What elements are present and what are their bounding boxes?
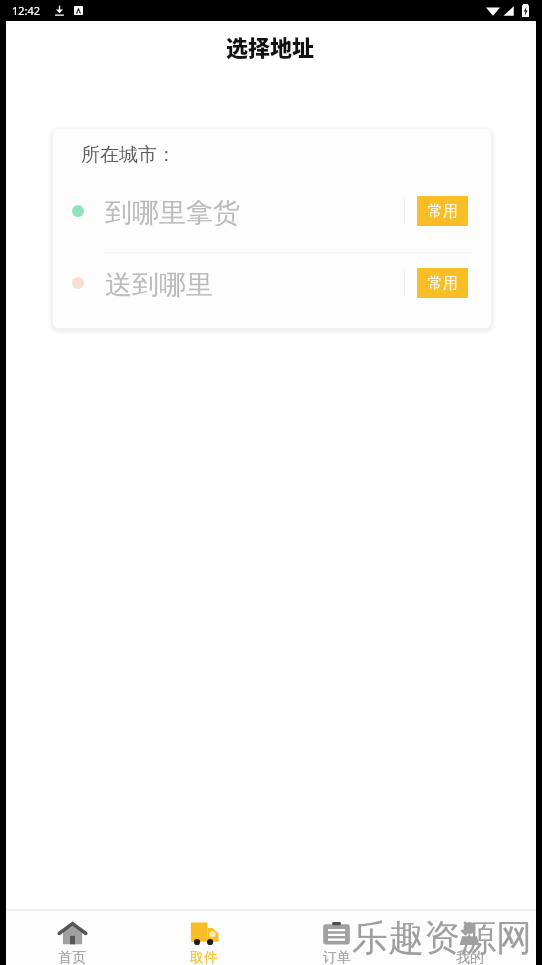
button[interactable]: Pickup	[138, 911, 270, 965]
staticText: 我的	[456, 949, 484, 965]
button[interactable]: 常用	[417, 196, 468, 226]
button[interactable]: Home	[6, 911, 138, 965]
staticText: 首页	[58, 949, 86, 965]
button[interactable]: 到哪里拿货	[53, 180, 491, 242]
staticText: 所在城市：	[81, 143, 176, 167]
button[interactable]: Orders	[270, 911, 403, 965]
other: Home	[57, 922, 88, 945]
button[interactable]: 送到哪里	[53, 252, 491, 314]
other: Pickup	[189, 922, 220, 945]
other: Profile	[454, 922, 485, 945]
staticText: 选择地址	[226, 30, 315, 62]
button[interactable]: 常用	[417, 268, 468, 298]
staticText: 12:42	[12, 3, 41, 18]
staticText: 到哪里拿货	[105, 196, 240, 226]
button[interactable]: Profile	[403, 911, 536, 965]
staticText: 取件	[190, 949, 218, 965]
staticText: 常用	[428, 274, 458, 293]
staticText: 常用	[428, 202, 458, 221]
staticText: 送到哪里	[105, 268, 213, 298]
staticText: 乐趣资源网	[352, 915, 532, 960]
staticText: 订单	[323, 949, 351, 965]
other: Orders	[321, 922, 352, 945]
